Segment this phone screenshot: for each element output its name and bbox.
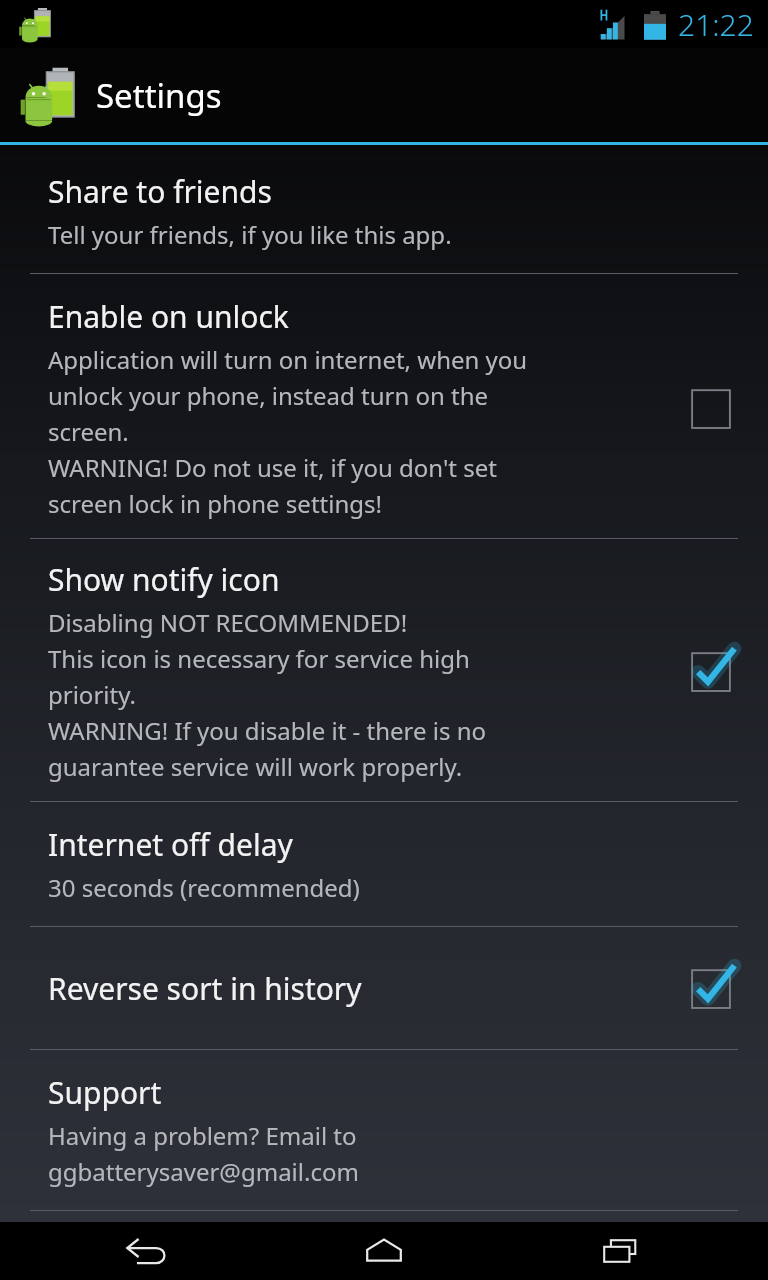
staticText: priority. — [48, 678, 136, 711]
button[interactable]: Checked — [684, 644, 738, 698]
button[interactable]: Show notify icon — [0, 539, 768, 801]
staticText: 21:22 — [678, 4, 754, 45]
staticText: WARNING! If you disable it - there is no — [48, 714, 487, 747]
staticText: Settings — [96, 73, 222, 118]
staticText: 30 seconds (recommended) — [48, 871, 360, 904]
staticText: Internet off delay — [48, 824, 293, 865]
staticText: unlock your phone, instead turn on the — [48, 379, 489, 412]
button[interactable]: Reverse sort in history — [0, 927, 768, 1049]
staticText: Support — [48, 1072, 162, 1113]
staticText: ggbatterysaver@gmail.com — [48, 1155, 359, 1188]
button[interactable]: Internet off delay — [0, 802, 768, 926]
button[interactable]: Back — [57, 1222, 237, 1280]
staticText: Tell your friends, if you like this app. — [48, 218, 452, 251]
button[interactable]: Support — [0, 1050, 768, 1210]
staticText: Disabling NOT RECOMMENDED! — [48, 606, 408, 639]
button[interactable]: Unchecked — [684, 381, 738, 435]
staticText: Having a problem? Email to — [48, 1119, 357, 1152]
button[interactable]: Checked — [684, 961, 738, 1015]
staticText: This icon is necessary for service high — [48, 642, 470, 675]
button[interactable]: Share to friends — [0, 145, 768, 273]
staticText: Show notify icon — [48, 559, 280, 600]
staticText: screen. — [48, 415, 129, 448]
staticText: screen lock in phone settings! — [48, 487, 382, 520]
staticText: Share to friends — [48, 171, 272, 212]
button[interactable]: Home — [294, 1222, 474, 1280]
button[interactable]: Recent apps — [531, 1222, 711, 1280]
button[interactable]: Enable on unlock — [0, 274, 768, 538]
staticText: Enable on unlock — [48, 296, 289, 337]
staticText: WARNING! Do not use it, if you don't set — [48, 451, 497, 484]
staticText: Application will turn on internet, when … — [48, 343, 528, 376]
staticText: Reverse sort in history — [48, 968, 362, 1009]
staticText: guarantee service will work properly. — [48, 750, 463, 783]
